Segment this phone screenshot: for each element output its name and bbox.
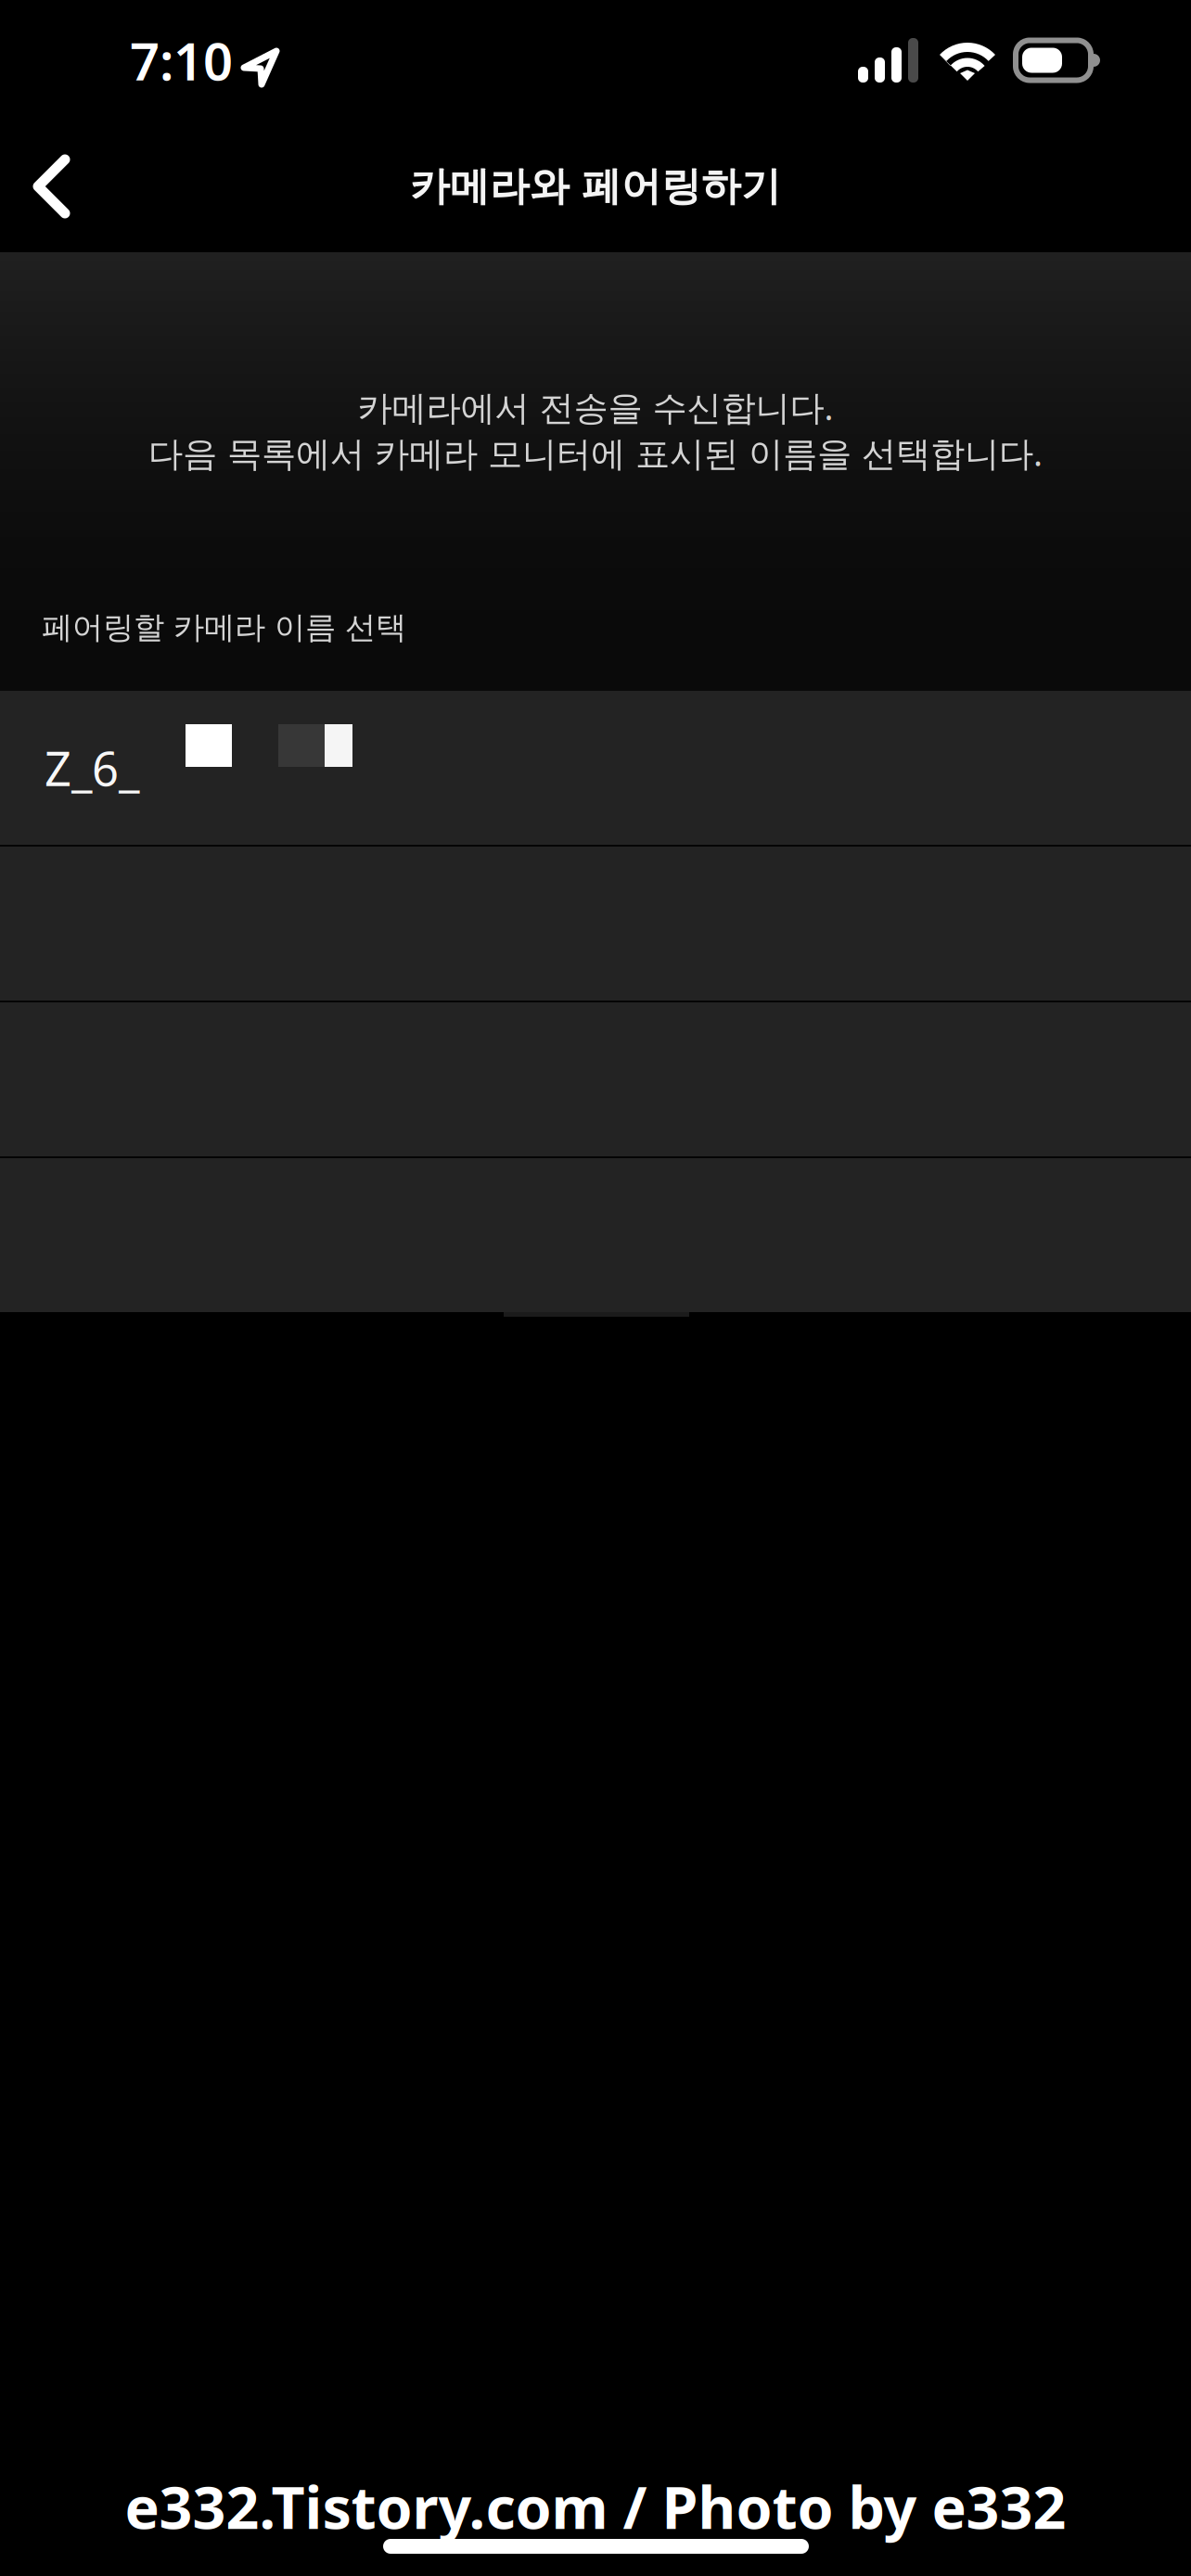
staticText: 7:10 xyxy=(130,26,233,95)
staticText: 카메라와 페어링하기 xyxy=(410,162,781,211)
staticText: e332.Tistory.com / Photo by e332 xyxy=(125,2468,1066,2545)
staticText: 다음 목록에서 카메라 모니터에 표시된 이름을 선택합니다. xyxy=(148,430,1043,476)
button[interactable]: Z_6_ xyxy=(0,691,1191,845)
staticText: Z_6_ xyxy=(45,737,139,799)
button[interactable]: Back xyxy=(0,126,113,247)
staticText: 카메라에서 전송을 수신합니다. xyxy=(358,384,833,430)
staticText: 페어링할 카메라 이름 선택 xyxy=(42,608,406,646)
